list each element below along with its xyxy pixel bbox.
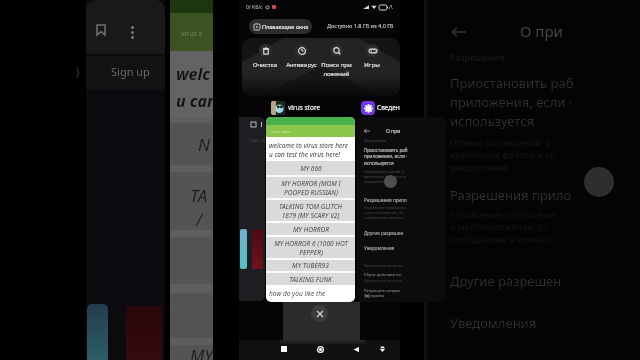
staticText: О при bbox=[520, 21, 563, 41]
staticText: welc bbox=[176, 63, 211, 85]
staticText: Разрешить отправ настройка bbox=[364, 288, 400, 298]
staticText: Сброс действий по bbox=[364, 272, 401, 277]
staticText: Приостановить раб приложения, если · исп… bbox=[364, 147, 408, 166]
button[interactable]: Сведен bbox=[361, 100, 400, 115]
staticText: Антивирус bbox=[286, 61, 317, 69]
staticText: MY HORROR 6 (1000 HOT PEPPER) bbox=[274, 239, 348, 257]
button[interactable]: virus store bbox=[271, 100, 321, 115]
staticText: Управление разрешени о местоположении, п… bbox=[364, 205, 406, 220]
staticText: welcome to virus store here u can test t… bbox=[269, 141, 349, 159]
button[interactable]: Hide keyboard bbox=[373, 340, 391, 358]
staticText: 0/ КБ/с bbox=[246, 4, 263, 11]
staticText: N bbox=[198, 133, 211, 156]
staticText: /\ bbox=[389, 4, 393, 11]
staticText: Управление разрешени о местоположении, п… bbox=[450, 208, 555, 246]
staticText: Уведомления bbox=[364, 245, 395, 251]
staticText: how do you like the bbox=[269, 289, 326, 298]
button[interactable]: TALKING TOM GLITCH 1879 (MY SCARY V2) bbox=[266, 200, 355, 221]
button[interactable]: MY 666 bbox=[266, 161, 355, 175]
staticText: Приостановить раб приложения, если · исп… bbox=[450, 74, 574, 130]
button[interactable]: MY TUBER93 bbox=[266, 260, 355, 271]
button[interactable]: TALKING FUNK bbox=[266, 273, 355, 285]
button[interactable]: MY HORROR bbox=[266, 223, 355, 235]
staticText: Разрешения прило bbox=[450, 186, 572, 204]
button[interactable]: Home bbox=[311, 340, 329, 358]
staticText: virus store bbox=[271, 129, 291, 134]
staticText: MY HORROR (MOM I POOPED RUSSIAN) bbox=[281, 179, 341, 197]
button[interactable]: MY HORROR (MOM I POOPED RUSSIAN) bbox=[266, 177, 355, 198]
staticText: Очистка bbox=[253, 61, 277, 69]
staticText: Sign up bbox=[111, 64, 150, 79]
button[interactable]: Антивирус bbox=[282, 44, 320, 86]
staticText: Действия по умолчан bbox=[364, 278, 402, 283]
button[interactable]: virus store bbox=[266, 117, 355, 302]
staticText: Sign up bbox=[249, 137, 265, 144]
staticText: Другие разрешен bbox=[364, 230, 404, 236]
staticText: Сведен bbox=[377, 103, 400, 112]
staticText: Плавающие окна bbox=[262, 23, 309, 30]
staticText: Игры bbox=[364, 61, 380, 69]
staticText: u car bbox=[176, 90, 214, 112]
staticText: Доступно 1.8 ГБ из 4.0 ГБ bbox=[327, 22, 394, 29]
staticText: TALKING FUNK bbox=[289, 275, 332, 284]
button[interactable]: Recent apps bbox=[275, 340, 293, 358]
button[interactable]: О при bbox=[357, 117, 446, 302]
staticText: TA bbox=[190, 184, 208, 207]
staticText: virus store bbox=[288, 103, 321, 112]
staticText: TALKING TOM GLITCH 1879 (MY SCARY V2) bbox=[279, 202, 342, 220]
staticText: virus s bbox=[181, 29, 203, 39]
button[interactable]: Игры bbox=[353, 44, 391, 86]
button[interactable]: Поиск приложений bbox=[317, 44, 355, 86]
staticText: ) bbox=[76, 64, 80, 79]
button[interactable]: Плавающие окна bbox=[249, 19, 312, 34]
button[interactable]: Close all bbox=[311, 305, 328, 322]
staticText: Другие разрешен bbox=[450, 272, 562, 290]
button[interactable]: Back bbox=[347, 340, 365, 358]
staticText: MY bbox=[190, 344, 213, 360]
button[interactable]: MY HORROR 6 (1000 HOT PEPPER) bbox=[266, 237, 355, 258]
staticText: Разрешения настроек bbox=[364, 263, 403, 268]
staticText: Уведомления bbox=[450, 314, 537, 332]
staticText: О при bbox=[386, 128, 401, 135]
staticText: Разрешения bbox=[364, 138, 386, 143]
staticText: Поиск при ложений bbox=[321, 61, 352, 78]
staticText: Отмена разрешений, у временных файлов и … bbox=[450, 136, 556, 174]
staticText: Разрешения прило bbox=[364, 197, 407, 203]
staticText: MY TUBER93 bbox=[292, 261, 329, 270]
staticText: / bbox=[196, 208, 203, 231]
staticText: Отмена разрешений, у временных файлов и … bbox=[364, 169, 406, 184]
staticText: Разрешения bbox=[450, 51, 505, 63]
button[interactable]: Очистка bbox=[246, 44, 284, 86]
staticText: MY 666 bbox=[300, 164, 322, 173]
staticText: MY HORROR bbox=[293, 225, 329, 234]
